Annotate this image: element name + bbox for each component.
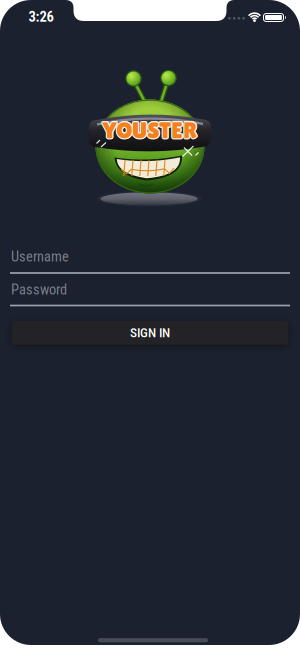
staticText: YOUSTER xyxy=(101,116,196,142)
button[interactable]: Username xyxy=(10,246,290,274)
staticText: YOUSTER xyxy=(103,117,198,143)
staticText: SIGN IN xyxy=(130,325,170,341)
staticText: Username xyxy=(11,248,69,265)
staticText: YOUSTER xyxy=(101,118,196,144)
staticText: Password xyxy=(11,281,67,298)
staticText: YOUSTER xyxy=(103,118,198,144)
button[interactable]: SIGN IN xyxy=(12,321,288,345)
staticText: YOUSTER xyxy=(102,117,197,143)
staticText: 3:26 xyxy=(28,8,53,25)
staticText: YOUSTER xyxy=(104,119,199,145)
button[interactable]: Password xyxy=(10,278,290,306)
staticText: YOUSTER xyxy=(101,117,196,143)
staticText: YOUSTER xyxy=(102,118,197,145)
staticText: YOUSTER xyxy=(103,116,198,142)
staticText: YOUSTER xyxy=(102,115,197,142)
